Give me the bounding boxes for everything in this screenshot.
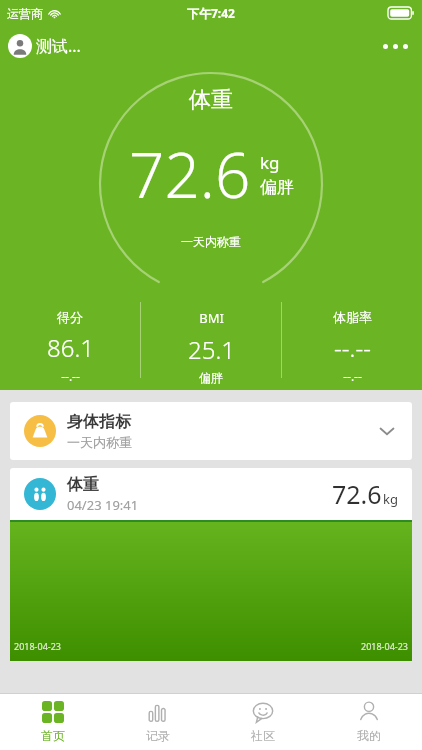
button[interactable]: More options	[369, 34, 422, 59]
staticText: 社区	[251, 728, 275, 743]
staticText: 体脂率	[333, 309, 372, 325]
staticText: 一天内称重	[67, 434, 132, 450]
staticText: 72.6	[332, 477, 382, 511]
staticText: --.--	[61, 368, 80, 384]
button[interactable]: 社区	[210, 694, 316, 750]
staticText: 首页	[41, 728, 65, 743]
staticText: 72.6	[129, 132, 251, 216]
button[interactable]: 得分	[0, 302, 140, 384]
staticText: 25.1	[188, 333, 235, 366]
button[interactable]: 体脂率	[282, 302, 422, 384]
staticText: 偏胖	[199, 370, 223, 384]
staticText: 运营商	[7, 6, 43, 21]
button[interactable]: 测试...	[0, 30, 89, 62]
staticText: 我的	[357, 728, 381, 743]
staticText: 身体指标	[67, 412, 131, 432]
button[interactable]: 身体指标	[10, 402, 412, 460]
staticText: 得分	[57, 309, 83, 325]
staticText: 体重	[189, 86, 233, 114]
button[interactable]: BMI	[141, 302, 281, 384]
button[interactable]: 2018-04-23	[10, 520, 412, 661]
button[interactable]: 我的	[316, 694, 422, 750]
staticText: 04/23 19:41	[67, 496, 139, 514]
staticText: 体重	[67, 475, 99, 495]
button[interactable]: 体重	[10, 468, 412, 520]
staticText: 下午7:42	[187, 5, 235, 21]
staticText: 测试...	[36, 35, 81, 57]
staticText: BMI	[199, 309, 224, 327]
staticText: 记录	[146, 728, 170, 743]
staticText: 偏胖	[260, 177, 294, 198]
button[interactable]: 记录	[105, 694, 210, 750]
staticText: 一天内称重	[181, 234, 241, 249]
staticText: 86.1	[47, 331, 94, 364]
button[interactable]: 首页	[0, 694, 105, 750]
staticText: 2018-04-23	[361, 640, 408, 652]
staticText: --.--	[334, 331, 371, 364]
staticText: --.--	[343, 368, 362, 384]
staticText: kg	[383, 490, 398, 508]
staticText: kg	[260, 151, 280, 174]
staticText: 2018-04-23	[14, 640, 61, 652]
